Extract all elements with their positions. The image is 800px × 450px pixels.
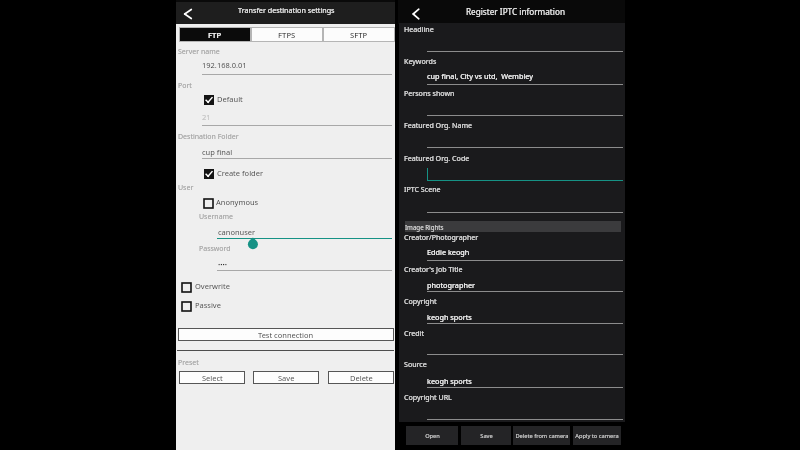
staticText: Eddie keogh (427, 247, 470, 257)
staticText: Featured Org. Code (404, 153, 470, 163)
staticText: photographer (427, 280, 476, 290)
staticText: Source (404, 359, 427, 369)
button[interactable]: Test connection (178, 328, 394, 341)
staticText: Username (199, 212, 234, 222)
button[interactable]: Username (217, 225, 392, 239)
button[interactable]: Default (202, 92, 250, 107)
staticText: 192.168.0.01 (202, 60, 247, 70)
staticText: Featured Org. Name (404, 120, 473, 130)
staticText: Password (199, 244, 231, 254)
staticText: canonuser (218, 227, 256, 237)
staticText: Default (217, 94, 243, 104)
staticText: Save (480, 432, 493, 440)
button[interactable]: Copyright (427, 309, 623, 324)
staticText: Open (425, 432, 440, 440)
button[interactable]: Featured Org. Code (427, 166, 623, 181)
staticText: Copyright URL (404, 392, 452, 402)
button[interactable]: SFTP (323, 27, 395, 42)
staticText: Copyright (404, 296, 437, 306)
button[interactable]: Creator's Job Title (427, 277, 623, 292)
staticText: Headline (404, 24, 434, 34)
staticText: 21 (202, 112, 211, 122)
button[interactable]: Back (177, 3, 199, 25)
button[interactable]: Featured Org. Name (427, 132, 623, 148)
button[interactable]: Credit (427, 340, 623, 355)
staticText: Creator/Photographer (404, 232, 479, 242)
button[interactable]: Keywords (427, 69, 623, 84)
staticText: Select (202, 373, 223, 383)
staticText: Overwrite (195, 281, 230, 291)
staticText: •••• (218, 261, 228, 269)
button[interactable]: Back (405, 3, 427, 25)
staticText: Register IPTC information (466, 6, 565, 17)
button[interactable]: Delete (328, 371, 394, 384)
button[interactable]: Server name (202, 58, 392, 74)
button[interactable]: Create folder (202, 166, 277, 181)
button[interactable]: Anonymous (202, 196, 257, 210)
staticText: keogh sports (427, 312, 472, 322)
staticText: keogh sports (427, 376, 472, 386)
button[interactable]: FTPS (251, 27, 323, 42)
button[interactable]: Creator/Photographer (427, 245, 623, 260)
button[interactable]: Overwrite (180, 280, 237, 294)
staticText: Server name (178, 47, 220, 57)
staticText: Delete (350, 373, 373, 383)
staticText: Persons shown (404, 88, 455, 98)
button[interactable]: Open (406, 426, 458, 445)
button[interactable]: Save (253, 371, 319, 384)
staticText: Create folder (217, 168, 264, 178)
staticText: Anonymous (216, 197, 259, 207)
button[interactable]: Save (461, 426, 511, 445)
button[interactable]: Apply to camera (573, 426, 621, 445)
button[interactable]: Source (427, 373, 623, 388)
button[interactable]: Persons shown (427, 100, 623, 116)
button[interactable]: Delete from camera (513, 426, 570, 445)
staticText: Save (278, 373, 295, 383)
button[interactable]: Select (179, 371, 245, 384)
staticText: SFTP (350, 30, 368, 40)
staticText: Transfer destination settings (238, 5, 335, 15)
button[interactable]: Passive (180, 299, 228, 313)
button[interactable]: Destination Folder (202, 144, 392, 158)
staticText: Test connection (258, 330, 314, 340)
staticText: Image Rights (405, 223, 444, 231)
staticText: FTP (208, 30, 222, 40)
staticText: Delete from camera (515, 432, 569, 440)
staticText: Preset (178, 358, 199, 368)
staticText: Credit (404, 328, 425, 338)
staticText: IPTC Scene (404, 184, 441, 194)
staticText: cup final, City vs utd, Wembley (427, 71, 533, 81)
staticText: Passive (195, 300, 221, 310)
staticText: User (178, 183, 194, 193)
button[interactable]: FTP (179, 27, 251, 42)
button[interactable]: Copyright URL (427, 404, 623, 420)
staticText: FTPS (278, 30, 296, 40)
staticText: Creator's Job Title (404, 264, 463, 274)
staticText: Apply to camera (575, 432, 619, 440)
button[interactable]: Password (217, 257, 392, 271)
staticText: Destination Folder (178, 132, 239, 142)
staticText: Keywords (404, 56, 437, 66)
staticText: cup final (202, 147, 233, 157)
staticText: Port (178, 81, 192, 91)
